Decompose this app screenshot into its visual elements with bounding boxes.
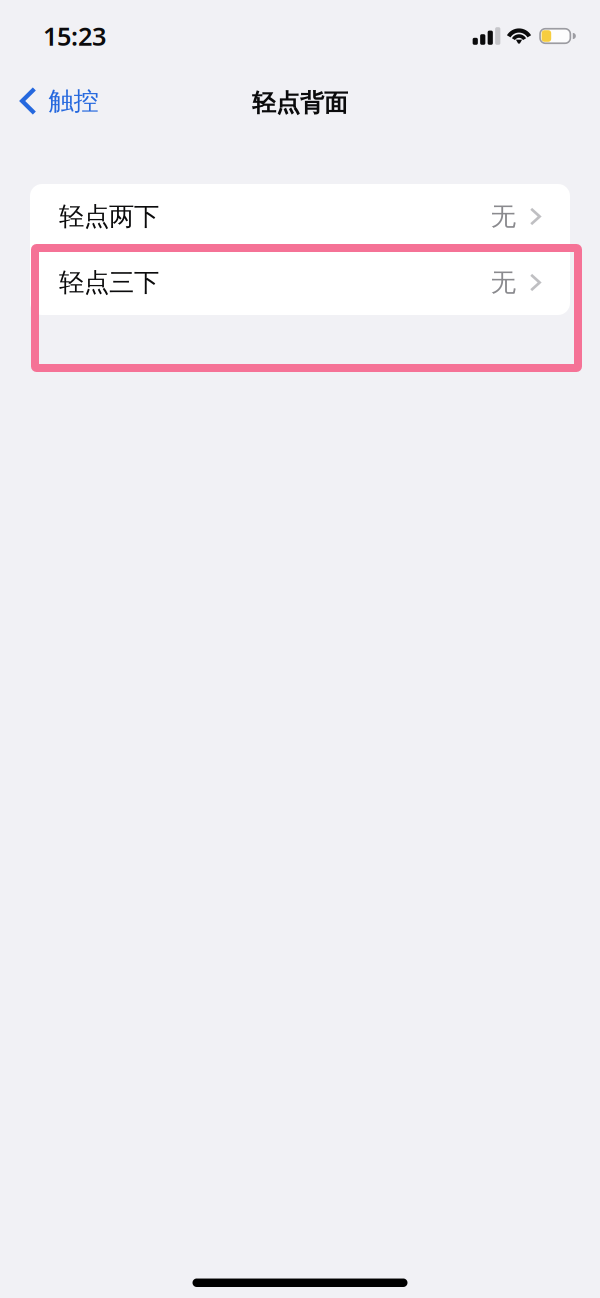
staticText: 轻点背面 xyxy=(252,88,348,118)
staticText: 无 xyxy=(491,267,516,298)
button[interactable]: 返回 触控 xyxy=(0,79,112,123)
button[interactable]: 轻点两下 xyxy=(30,184,570,249)
staticText: 轻点两下 xyxy=(59,201,159,232)
button[interactable]: 轻点三下 xyxy=(30,250,570,315)
staticText: 无 xyxy=(491,201,516,232)
staticText: 15:23 xyxy=(43,19,106,53)
staticText: 触控 xyxy=(48,85,98,116)
staticText: 轻点三下 xyxy=(59,267,159,298)
